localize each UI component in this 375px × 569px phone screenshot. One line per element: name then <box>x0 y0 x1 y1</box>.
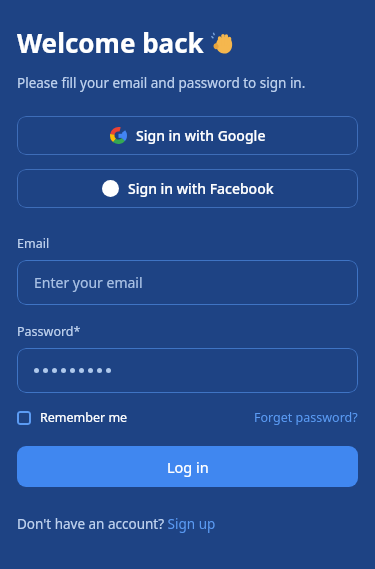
staticText: Don't have an account? Sign up <box>17 515 216 533</box>
button[interactable]: Enter your email <box>17 260 358 305</box>
button[interactable]: Log in <box>17 446 358 487</box>
staticText: Forget password? <box>254 409 358 426</box>
staticText: Log in <box>167 457 209 477</box>
button[interactable]: Remember me <box>17 409 128 426</box>
button[interactable]: Forget password? <box>254 409 358 426</box>
staticText: Please fill your email and password to s… <box>17 74 306 92</box>
button[interactable]: Don't have an account? Sign up <box>17 515 216 533</box>
button[interactable] <box>17 348 358 393</box>
staticText: Email <box>17 235 50 252</box>
staticText: Enter your email <box>34 273 143 292</box>
staticText: Password* <box>17 323 81 340</box>
staticText: Sign in with Google <box>136 126 266 145</box>
staticText: Welcome back <box>17 25 204 60</box>
staticText: Sign in with Facebook <box>128 179 274 198</box>
button[interactable]: Sign in with Google <box>17 116 358 155</box>
button[interactable]: Sign in with Facebook <box>17 169 358 208</box>
staticText: Remember me <box>40 409 128 426</box>
